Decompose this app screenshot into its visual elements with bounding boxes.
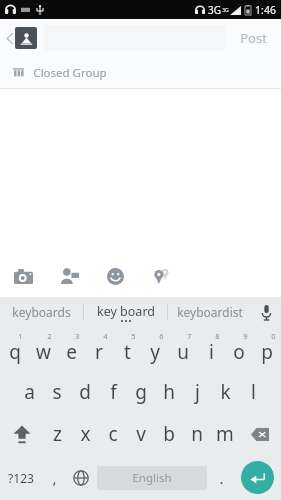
button[interactable]: 3: [57, 327, 85, 371]
staticText: s: [52, 379, 62, 405]
staticText: b: [163, 421, 175, 447]
button[interactable]: Feeling: [92, 255, 138, 297]
staticText: r: [95, 339, 103, 365]
button[interactable]: v: [127, 413, 155, 455]
staticText: Post: [240, 29, 267, 47]
staticText: 5: [131, 331, 136, 341]
button[interactable]: Enter: [234, 455, 281, 500]
staticText: c: [108, 421, 118, 447]
staticText: f: [110, 379, 117, 405]
button[interactable]: f: [99, 371, 127, 413]
staticText: l: [251, 379, 256, 405]
staticText: 4: [103, 331, 108, 341]
button[interactable]: Tag people: [46, 255, 92, 297]
staticText: i: [209, 339, 214, 365]
staticText: h: [163, 379, 175, 405]
staticText: p: [261, 339, 273, 365]
button[interactable]: d: [71, 371, 99, 413]
button[interactable]: key board: [84, 297, 167, 327]
staticText: e: [66, 339, 77, 365]
staticText: z: [53, 421, 62, 447]
button[interactable]: Check in: [138, 255, 184, 297]
button[interactable]: 8: [197, 327, 225, 371]
staticText: 8: [215, 331, 220, 341]
staticText: ?123: [8, 470, 34, 486]
staticText: .: [219, 468, 224, 488]
button[interactable]: Comma: [42, 455, 67, 500]
button[interactable]: 4: [85, 327, 113, 371]
button[interactable]: ?123: [0, 455, 42, 500]
button[interactable]: 2: [29, 327, 57, 371]
button[interactable]: a: [15, 371, 43, 413]
staticText: o: [233, 339, 245, 365]
staticText: 1:46: [255, 3, 276, 17]
button[interactable]: Closed Group: [0, 57, 281, 88]
staticText: x: [80, 421, 91, 447]
button[interactable]: Shift: [0, 413, 43, 455]
staticText: English: [132, 470, 172, 486]
staticText: q: [9, 339, 21, 365]
staticText: keyboardist: [177, 304, 243, 320]
button[interactable]: Voice input: [251, 297, 281, 327]
button[interactable]: 1: [0, 327, 29, 371]
staticText: w: [36, 339, 51, 365]
button[interactable]: b: [155, 413, 183, 455]
staticText: n: [191, 421, 203, 447]
staticText: 6: [159, 331, 164, 341]
staticText: 3G: [222, 7, 229, 14]
button[interactable]: z: [43, 413, 71, 455]
button[interactable]: keyboardist: [168, 297, 251, 327]
staticText: j: [195, 379, 200, 405]
button[interactable]: n: [183, 413, 211, 455]
staticText: k: [220, 379, 231, 405]
button[interactable]: x: [71, 413, 99, 455]
button[interactable]: c: [99, 413, 127, 455]
staticText: 9: [243, 331, 248, 341]
button[interactable]: Backspace: [239, 413, 281, 455]
staticText: keyboards: [12, 304, 71, 320]
button[interactable]: h: [155, 371, 183, 413]
button[interactable]: 5: [113, 327, 141, 371]
staticText: m: [216, 421, 234, 447]
staticText: 2: [47, 331, 52, 341]
button[interactable]: k: [211, 371, 239, 413]
staticText: key board: [97, 303, 155, 320]
staticText: y: [150, 339, 160, 365]
button[interactable]: Back: [0, 19, 44, 57]
button[interactable]: 6: [141, 327, 169, 371]
staticText: 0: [271, 331, 276, 341]
staticText: 7: [187, 331, 192, 341]
button[interactable]: j: [183, 371, 211, 413]
staticText: 1: [18, 331, 23, 341]
staticText: 3G: [208, 3, 221, 17]
button[interactable]: g: [127, 371, 155, 413]
staticText: v: [136, 421, 146, 447]
staticText: g: [135, 379, 147, 405]
button[interactable]: Period: [209, 455, 234, 500]
button[interactable]: 7: [169, 327, 197, 371]
button[interactable]: Photo: [0, 255, 46, 297]
button[interactable]: s: [43, 371, 71, 413]
button[interactable]: 0: [253, 327, 281, 371]
button[interactable]: l: [239, 371, 267, 413]
staticText: ,: [52, 468, 57, 488]
staticText: t: [124, 339, 131, 365]
staticText: 3: [75, 331, 80, 341]
button[interactable]: Change language: [67, 455, 95, 500]
button[interactable]: 9: [225, 327, 253, 371]
staticText: a: [24, 379, 35, 405]
button[interactable]: Post: [225, 19, 281, 57]
staticText: u: [177, 339, 189, 365]
button[interactable]: m: [211, 413, 239, 455]
button[interactable]: English: [97, 466, 207, 490]
button[interactable]: keyboards: [0, 297, 83, 327]
staticText: d: [79, 379, 91, 405]
staticText: Closed Group: [33, 65, 107, 81]
